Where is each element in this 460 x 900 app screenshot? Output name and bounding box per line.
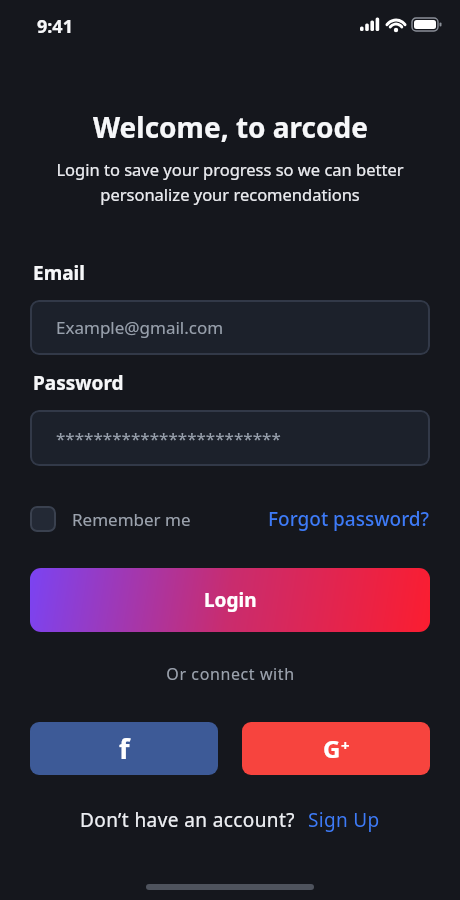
button[interactable]: Login: [30, 568, 430, 632]
staticText: Login: [204, 587, 257, 613]
staticText: Remember me: [72, 508, 191, 531]
button[interactable]: Example@gmail.com: [30, 300, 430, 355]
button[interactable]: Sign Up: [308, 807, 380, 833]
button[interactable]: [30, 506, 56, 532]
staticText: G: [323, 732, 341, 765]
staticText: Login to save your progress so we can be…: [56, 158, 404, 205]
staticText: Email: [33, 260, 85, 286]
staticText: Password: [33, 370, 124, 396]
staticText: Welcome, to arcode: [93, 108, 368, 146]
staticText: +: [341, 735, 350, 755]
button[interactable]: Forgot password?: [240, 504, 430, 534]
staticText: Don’t have an account?: [80, 807, 295, 833]
button[interactable]: f: [30, 722, 218, 775]
button[interactable]: G: [242, 722, 430, 775]
staticText: f: [119, 730, 130, 767]
staticText: 9:41: [37, 14, 73, 39]
staticText: Example@gmail.com: [56, 316, 224, 339]
staticText: Forgot password?: [268, 506, 430, 532]
staticText: ************************: [56, 427, 281, 450]
staticText: Or connect with: [166, 663, 295, 685]
button[interactable]: ************************: [30, 410, 430, 466]
